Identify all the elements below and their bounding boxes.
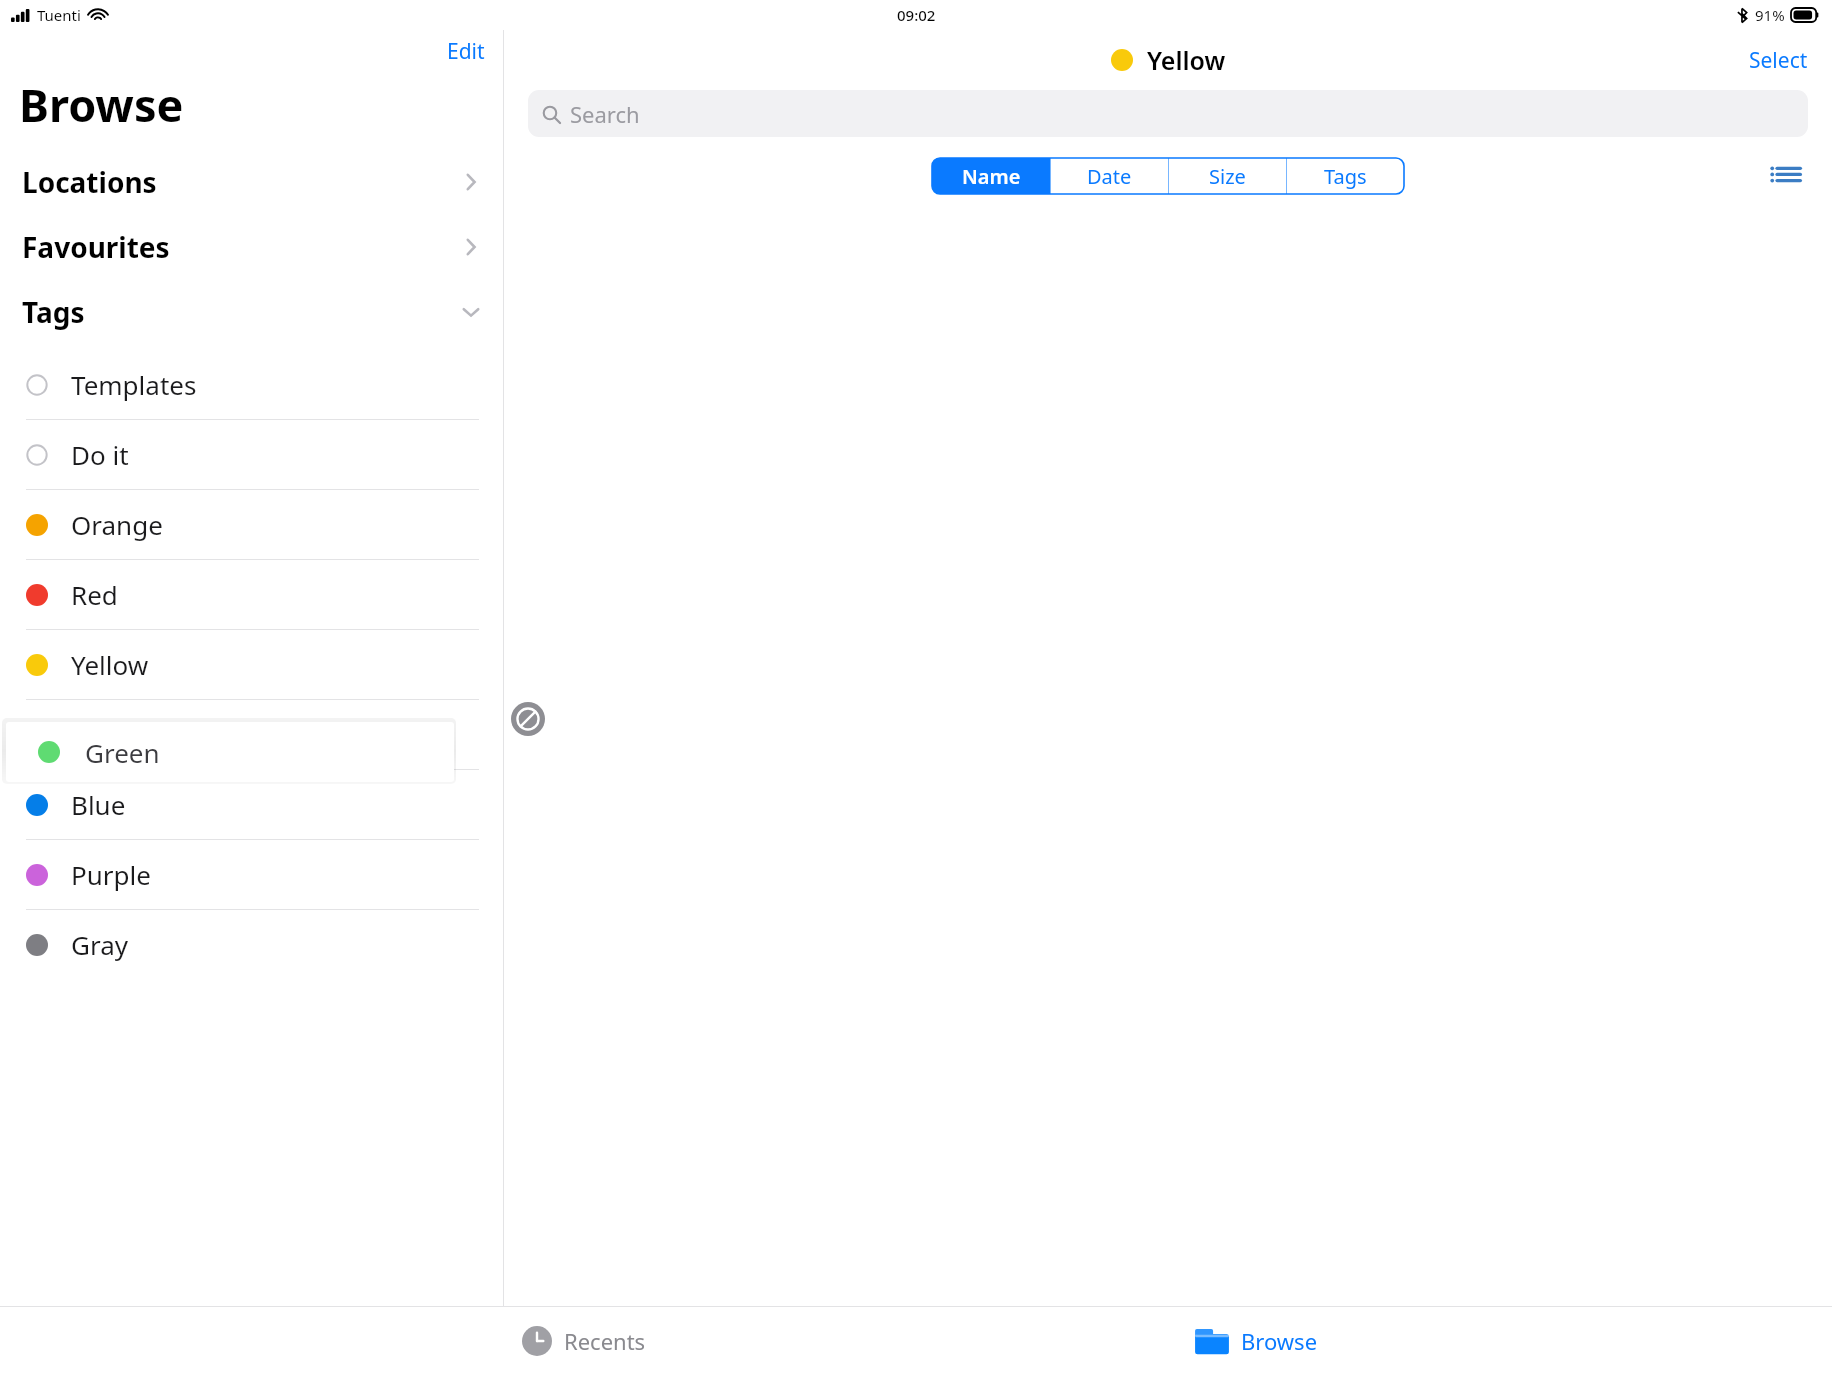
button[interactable]: Templates	[0, 350, 503, 419]
staticText: Do it	[71, 437, 129, 472]
staticText: Edit	[447, 37, 485, 66]
button[interactable]: Green	[6, 722, 454, 782]
staticText: Purple	[71, 857, 151, 892]
staticText: Orange	[71, 507, 163, 542]
staticText: Tags	[22, 293, 461, 331]
staticText: Search	[570, 99, 640, 129]
button[interactable]: Favourites	[0, 214, 503, 279]
staticText: Select	[1749, 46, 1808, 75]
staticText: 09:02	[897, 5, 936, 25]
button[interactable]: Purple	[0, 840, 503, 909]
staticText: Browse	[1241, 1326, 1318, 1356]
button[interactable]: Green	[0, 700, 503, 769]
staticText: Favourites	[22, 228, 461, 266]
button[interactable]: Red	[0, 560, 503, 629]
button[interactable]: Edit	[429, 31, 503, 72]
button[interactable]: Browse	[1188, 1320, 1324, 1362]
staticText: Tags	[1324, 163, 1367, 190]
staticText: Gray	[71, 927, 128, 962]
button[interactable]: Gray	[0, 910, 503, 979]
staticText: Green	[71, 717, 146, 752]
staticText: 91%	[1755, 5, 1785, 25]
button[interactable]: Recents	[516, 1320, 652, 1362]
staticText: Yellow	[1147, 43, 1226, 77]
button[interactable]: Tags	[1286, 158, 1404, 194]
button[interactable]: Select	[1725, 38, 1832, 83]
staticText: Locations	[22, 163, 461, 201]
button[interactable]: Tags	[0, 279, 503, 344]
staticText: Templates	[71, 367, 197, 402]
staticText: Date	[1087, 163, 1132, 190]
button[interactable]: Yellow	[0, 630, 503, 699]
staticText: Red	[71, 577, 118, 612]
staticText: Green	[85, 735, 160, 770]
staticText: Tuenti	[37, 5, 81, 25]
staticText: Size	[1209, 163, 1246, 190]
button[interactable]: Do it	[0, 420, 503, 489]
staticText: Blue	[71, 787, 126, 822]
button[interactable]: Size	[1168, 158, 1286, 194]
button[interactable]: Locations	[0, 149, 503, 214]
staticText: Name	[962, 163, 1021, 190]
staticText: Recents	[564, 1326, 646, 1356]
button[interactable]: Search	[528, 90, 1808, 137]
button[interactable]: Blue	[0, 770, 503, 839]
staticText: Browse	[19, 74, 184, 135]
staticText: Yellow	[71, 647, 149, 682]
button[interactable]: Name	[932, 158, 1050, 194]
button[interactable]: List view	[1760, 155, 1812, 197]
button[interactable]: Date	[1050, 158, 1168, 194]
button[interactable]: Orange	[0, 490, 503, 559]
